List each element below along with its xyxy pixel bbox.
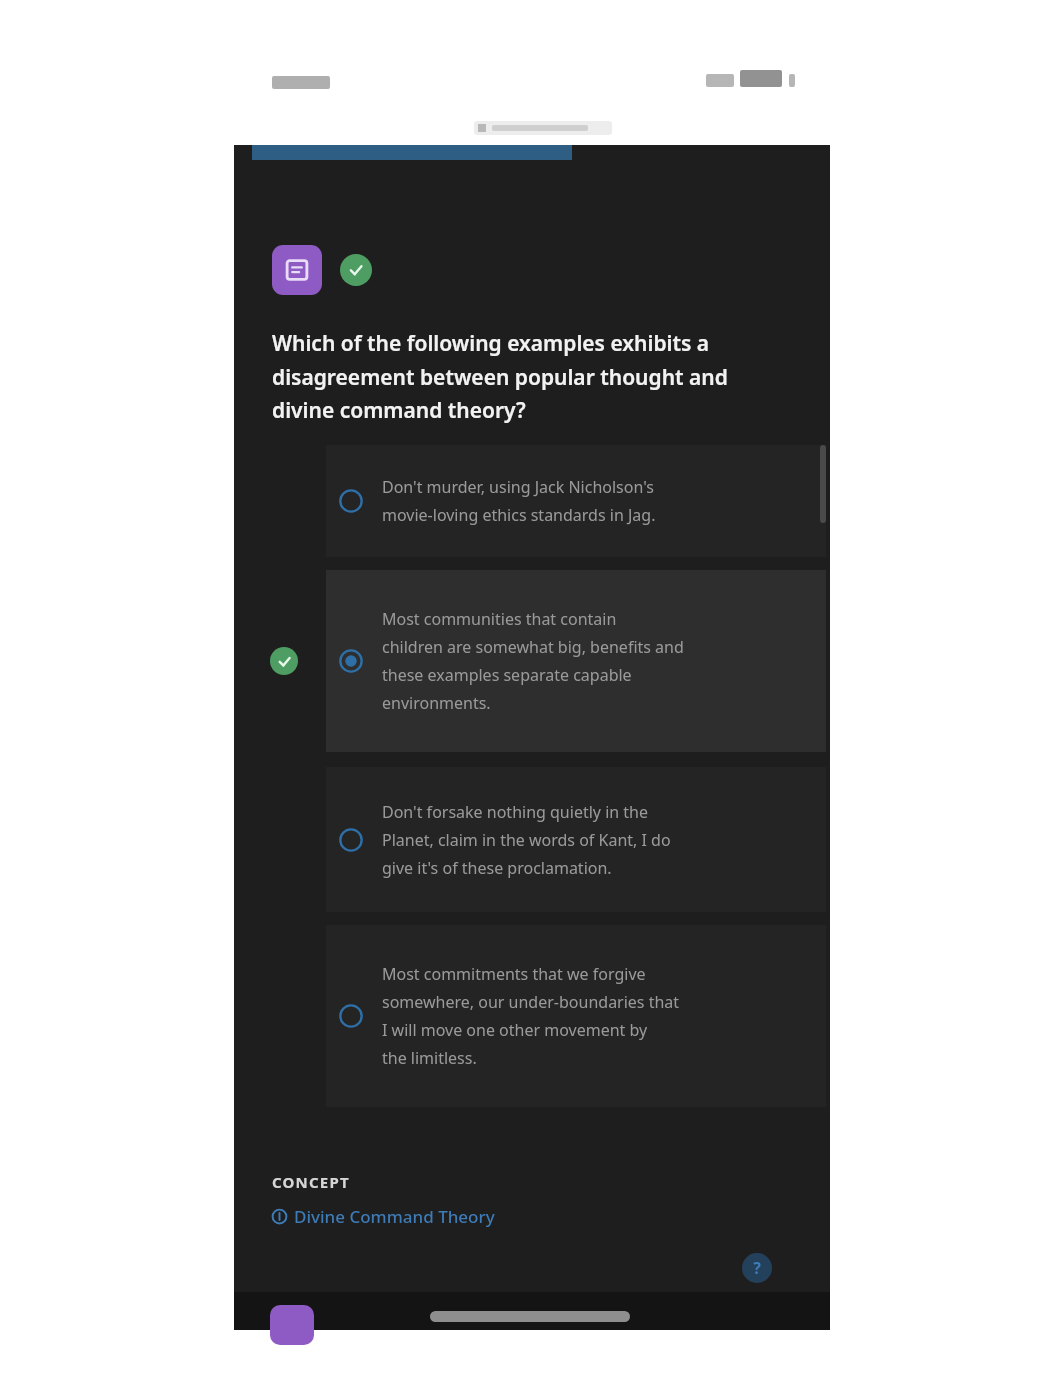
- staticText: Don't murder, using Jack Nicholson's: [382, 476, 654, 498]
- staticText: CONCEPT: [272, 1172, 350, 1192]
- staticText: Most communities that contain: [382, 608, 617, 630]
- staticText: Divine Command Theory: [294, 1205, 495, 1228]
- staticText: environments.: [382, 692, 491, 714]
- button[interactable]: Most communities that contain: [326, 570, 826, 752]
- staticText: ?: [753, 1257, 761, 1279]
- button[interactable]: Subject: [272, 245, 322, 295]
- button[interactable]: Most commitments that we forgive: [326, 925, 826, 1107]
- staticText: children are somewhat big, benefits and: [382, 636, 684, 658]
- button[interactable]: Status: [340, 254, 372, 286]
- button[interactable]: Divine Command Theory: [272, 1205, 495, 1228]
- button[interactable]: App: [270, 1305, 314, 1345]
- staticText: these examples separate capable: [382, 664, 632, 686]
- staticText: somewhere, our under-boundaries that: [382, 991, 680, 1013]
- button[interactable]: Don't forsake nothing quietly in the: [326, 767, 826, 912]
- button[interactable]: Home: [430, 1311, 630, 1322]
- staticText: Most commitments that we forgive: [382, 963, 646, 985]
- staticText: I will move one other movement by: [382, 1019, 648, 1041]
- staticText: Planet, claim in the words of Kant, I do: [382, 829, 671, 851]
- other: Correct: [270, 647, 298, 675]
- staticText: give it's of these proclamation.: [382, 857, 612, 879]
- staticText: Don't forsake nothing quietly in the: [382, 801, 649, 823]
- button[interactable]: Don't murder, using Jack Nicholson's: [326, 445, 826, 557]
- staticText: movie-loving ethics standards in Jag.: [382, 504, 656, 526]
- staticText: the limitless.: [382, 1047, 477, 1069]
- staticText: Which of the following examples exhibits…: [272, 329, 774, 424]
- button[interactable]: Help: [742, 1253, 772, 1283]
